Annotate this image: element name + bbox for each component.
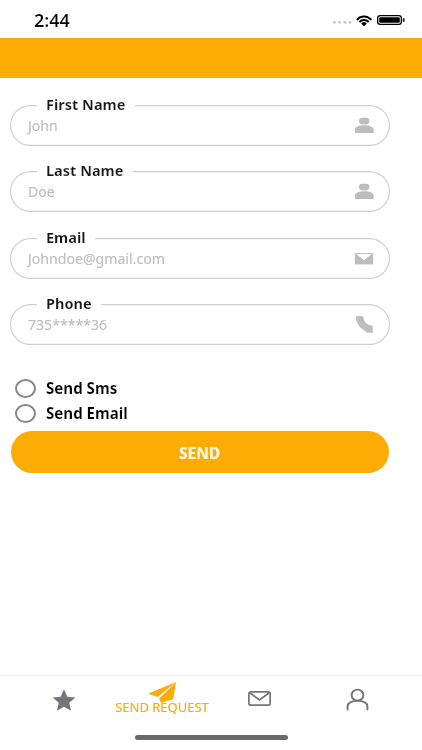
button[interactable]: Messages: [235, 676, 284, 724]
button[interactable]: Favourites: [39, 676, 88, 724]
staticText: 2:44: [34, 8, 70, 33]
staticText: John: [28, 116, 58, 135]
button[interactable]: SEND: [11, 431, 389, 473]
staticText: First Name: [46, 94, 126, 114]
staticText: SEND: [179, 442, 221, 463]
button[interactable]: Send Email: [0, 402, 422, 425]
staticText: Doe: [28, 182, 55, 201]
button[interactable]: First Name: [10, 105, 390, 146]
button[interactable]: Profile: [333, 676, 382, 724]
button[interactable]: Last Name: [10, 171, 390, 212]
staticText: Send Sms: [46, 378, 118, 399]
button[interactable]: Phone: [10, 304, 390, 345]
staticText: SEND REQUEST: [115, 698, 209, 716]
button[interactable]: SEND REQUEST: [107, 676, 217, 730]
staticText: Send Email: [46, 403, 128, 424]
staticText: 735*****36: [28, 315, 108, 334]
button[interactable]: Email: [10, 238, 390, 279]
button[interactable]: Send Sms: [0, 377, 422, 400]
staticText: Last Name: [46, 160, 124, 180]
staticText: Email: [46, 227, 86, 247]
staticText: Johndoe@gmail.com: [28, 249, 165, 268]
staticText: Phone: [46, 293, 92, 313]
